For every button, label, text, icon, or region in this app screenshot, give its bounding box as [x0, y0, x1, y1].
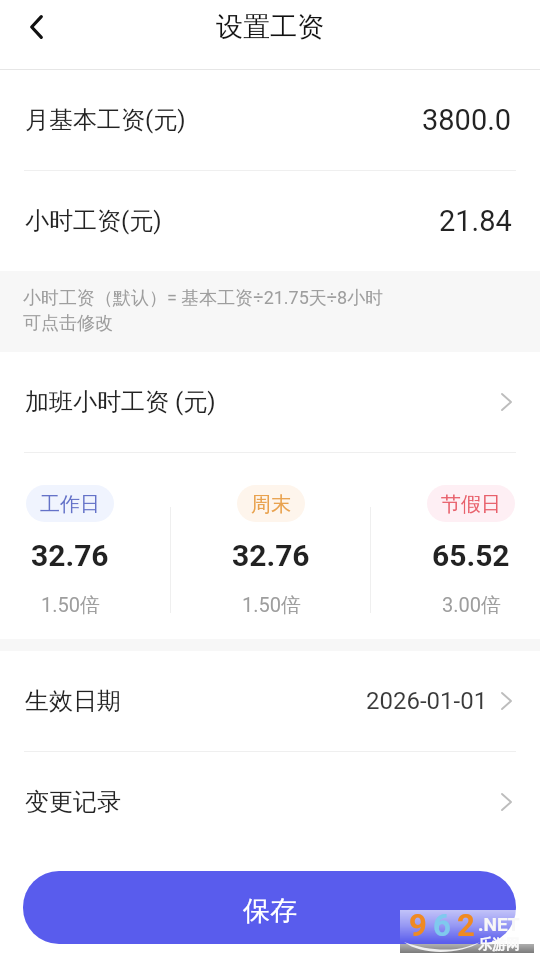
button[interactable]: 月基本工资(元) [0, 70, 540, 170]
button[interactable]: 保存 [23, 871, 516, 944]
button[interactable]: 小时工资(元) [0, 171, 540, 271]
staticText: 9 [409, 907, 427, 943]
staticText: 保存 [243, 894, 297, 928]
staticText: 加班小时工资 (元) [25, 387, 216, 417]
button[interactable]: 变更记录 [0, 752, 540, 852]
button[interactable]: 加班小时工资 (元) [0, 352, 540, 452]
staticText: 生效日期 [25, 686, 121, 716]
staticText: 节假日 [441, 492, 501, 517]
staticText: 可点击修改 [23, 312, 113, 335]
staticText: 小时工资(元) [25, 206, 162, 236]
staticText: 月基本工资(元) [25, 105, 186, 135]
staticText: 6 [433, 907, 451, 943]
staticText: .NET [478, 913, 520, 935]
staticText: 2026-01-01 [366, 687, 488, 715]
staticText: 小时工资（默认）= 基本工资÷21.75天÷8小时 [23, 287, 384, 310]
staticText: 工作日 [40, 492, 100, 517]
staticText: 2 [457, 907, 475, 943]
staticText: 3800.0 [422, 103, 512, 137]
staticText: 1.50倍 [41, 593, 100, 618]
staticText: 21.84 [439, 204, 512, 238]
staticText: 乐游网 [478, 936, 520, 954]
staticText: 1.50倍 [242, 593, 301, 618]
staticText: 设置工资 [216, 10, 324, 44]
staticText: 变更记录 [25, 787, 121, 817]
staticText: 周末 [251, 492, 291, 517]
staticText: 3.00倍 [442, 593, 501, 618]
staticText: 32.76 [232, 538, 310, 573]
button[interactable]: 生效日期 [0, 651, 540, 751]
staticText: 32.76 [31, 538, 109, 573]
staticText: 65.52 [432, 538, 510, 573]
button[interactable]: Back [8, 0, 64, 55]
